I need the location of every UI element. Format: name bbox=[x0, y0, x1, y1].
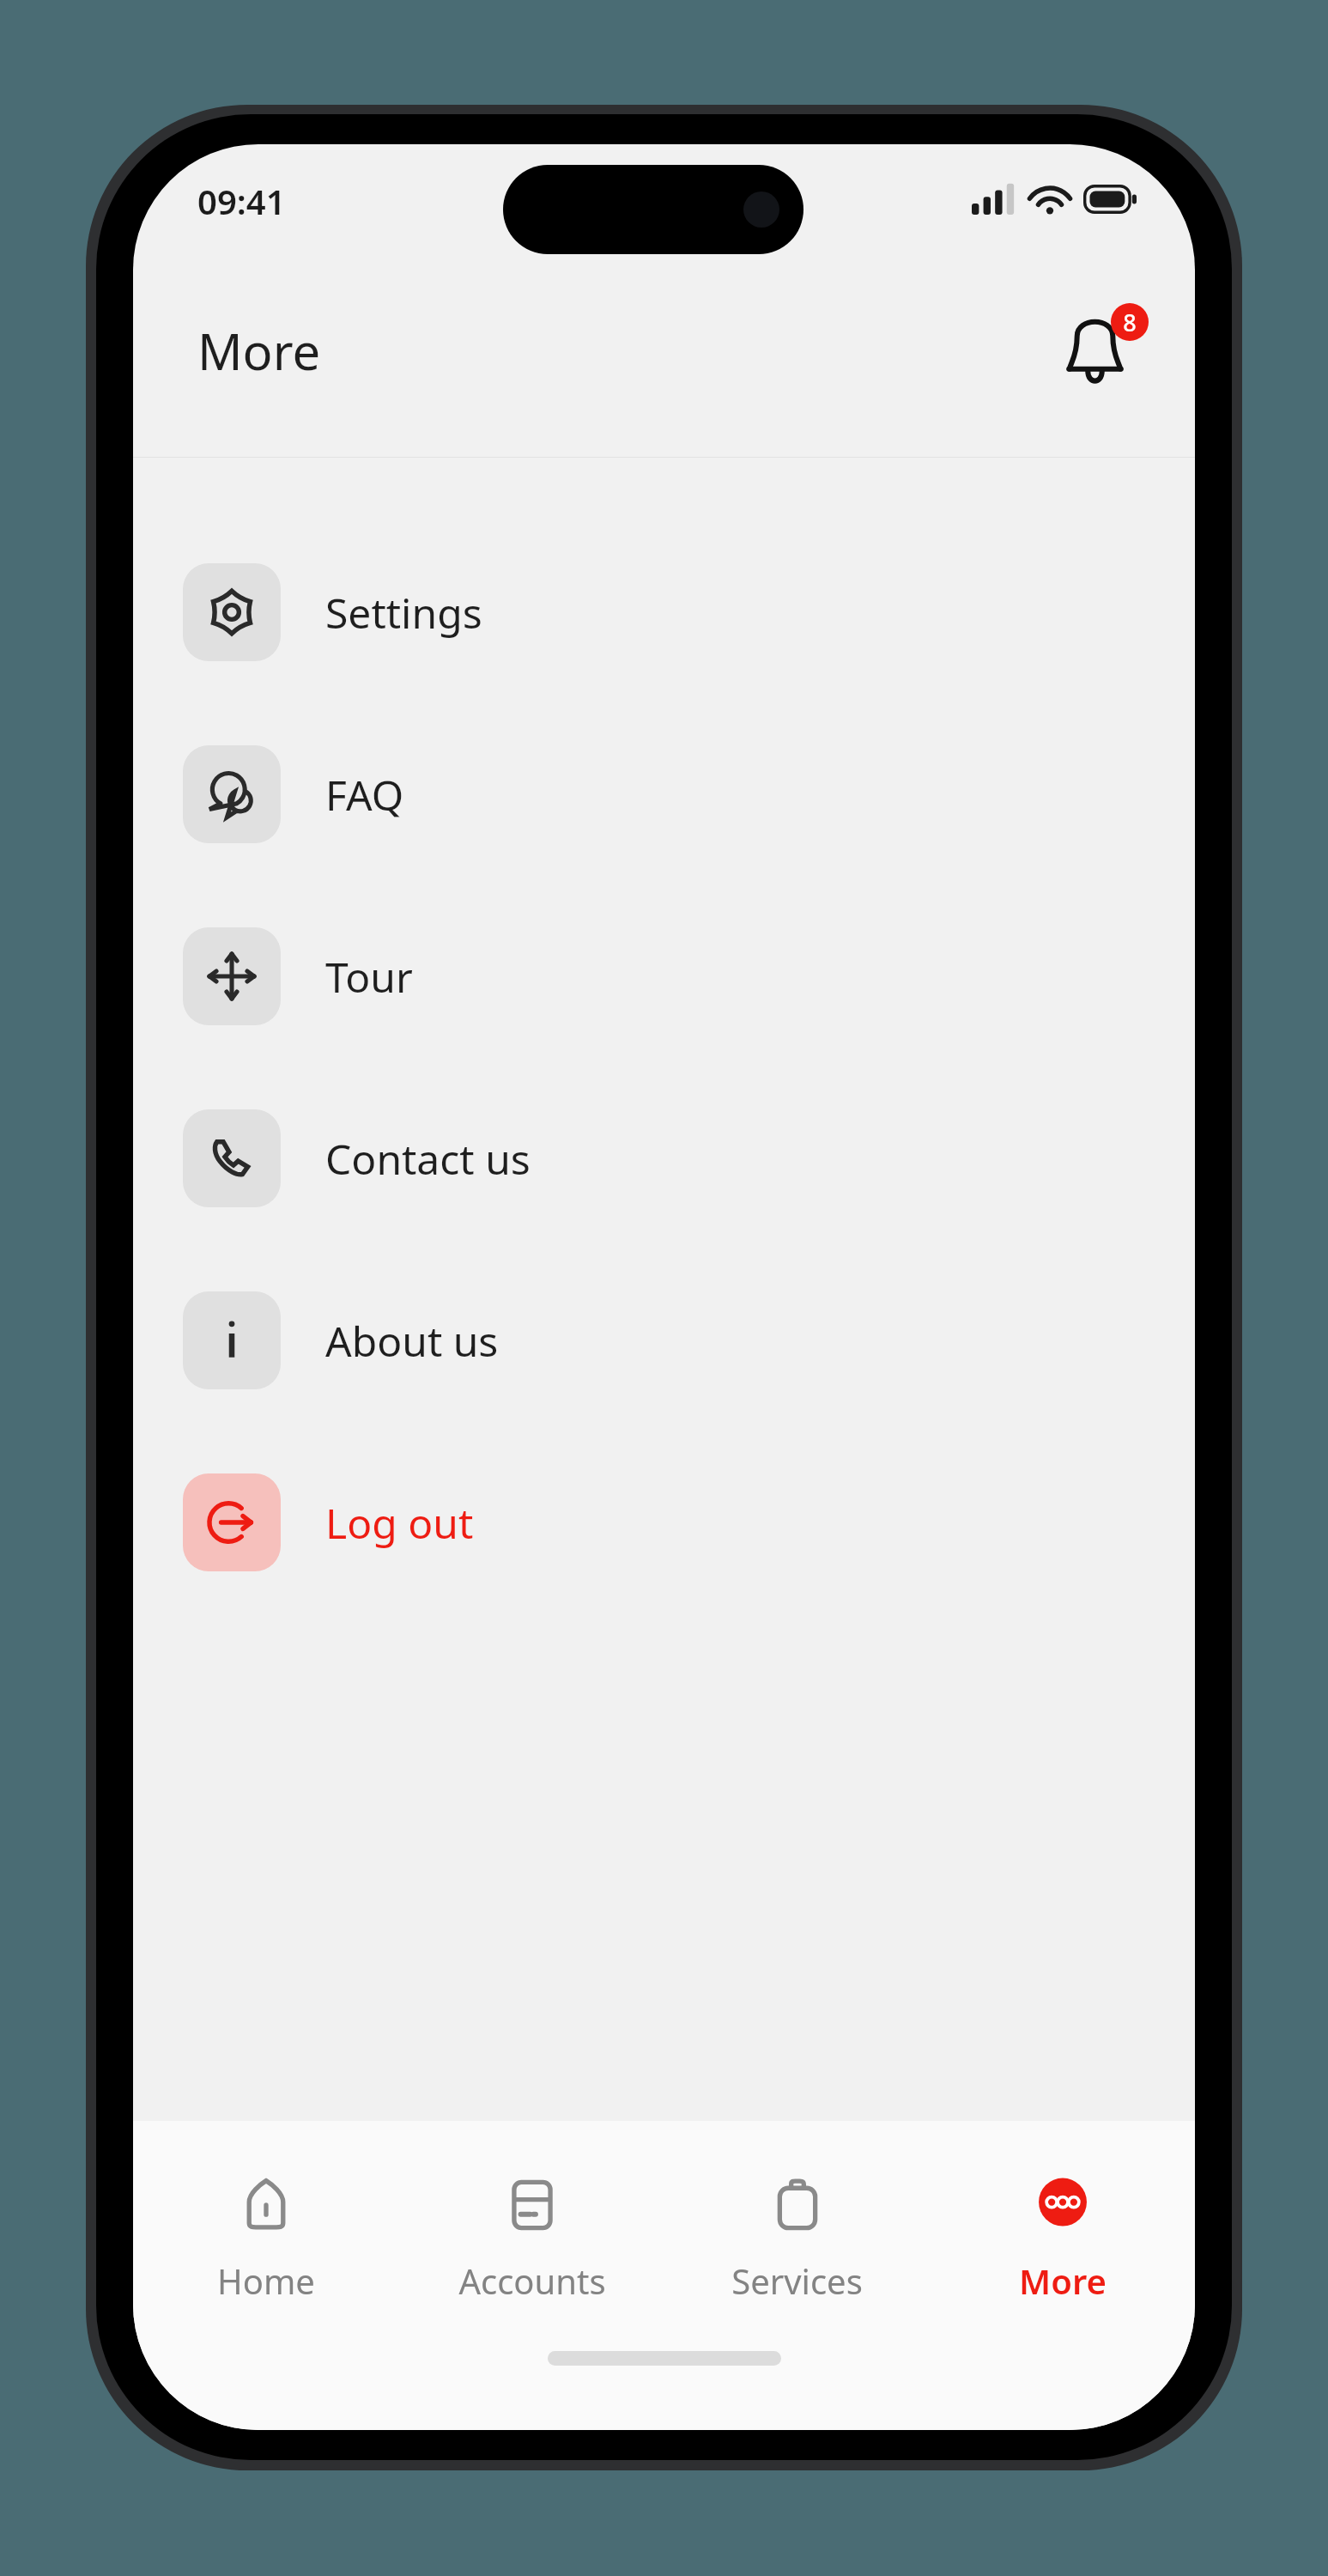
staticText: Services bbox=[731, 2257, 863, 2304]
button[interactable]: More bbox=[930, 2121, 1195, 2351]
button[interactable]: Log out bbox=[133, 1431, 1195, 1613]
staticText: More bbox=[1019, 2257, 1107, 2304]
staticText: Tour bbox=[325, 949, 413, 1005]
staticText: 8 bbox=[1123, 307, 1137, 338]
staticText: Settings bbox=[325, 585, 482, 641]
staticText: Home bbox=[217, 2257, 315, 2304]
staticText: About us bbox=[325, 1313, 499, 1369]
staticText: Contact us bbox=[325, 1131, 531, 1187]
button[interactable]: FAQ bbox=[133, 703, 1195, 885]
button[interactable]: Home bbox=[133, 2121, 399, 2351]
staticText: FAQ bbox=[325, 767, 404, 823]
staticText: 09:41 bbox=[197, 178, 286, 224]
button[interactable]: Accounts bbox=[399, 2121, 664, 2351]
button[interactable]: Notifications, 8 unread bbox=[1052, 305, 1147, 399]
staticText: Accounts bbox=[458, 2257, 606, 2304]
staticText: Log out bbox=[325, 1495, 474, 1551]
button[interactable]: Services bbox=[664, 2121, 930, 2351]
button[interactable]: Tour bbox=[133, 885, 1195, 1067]
staticText: More bbox=[197, 317, 321, 385]
button[interactable]: About us bbox=[133, 1249, 1195, 1431]
button[interactable]: Contact us bbox=[133, 1067, 1195, 1249]
button[interactable]: Settings bbox=[133, 521, 1195, 703]
